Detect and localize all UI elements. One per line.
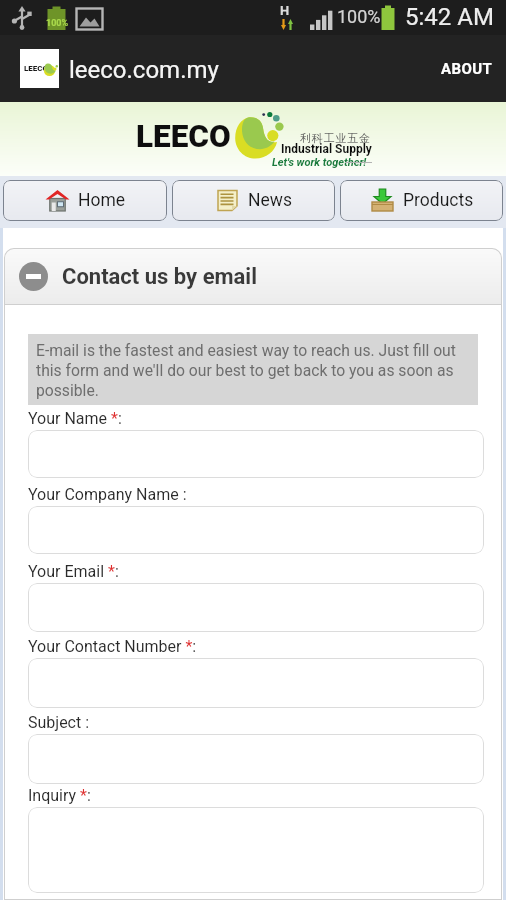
button[interactable] [28, 734, 484, 784]
button[interactable]: News [172, 180, 335, 221]
staticText: Your Name *: [28, 409, 122, 428]
button[interactable]: Contact us by email [4, 248, 502, 304]
staticText: H [280, 3, 290, 18]
button[interactable] [28, 583, 484, 632]
staticText: Inquiry *: [28, 786, 91, 805]
staticText: LEECO [24, 64, 49, 73]
staticText: News [248, 190, 292, 211]
staticText: LEECO [136, 118, 231, 155]
staticText: Your Email *: [28, 562, 119, 581]
staticText: Products [403, 190, 474, 211]
button[interactable]: Home [3, 180, 167, 221]
staticText: 100% [46, 18, 69, 29]
staticText: 利科工业五金 [300, 131, 371, 145]
staticText: leeco.com.my [69, 56, 219, 84]
staticText: Subject : [28, 713, 90, 732]
button[interactable]: ABOUT [428, 42, 506, 96]
staticText: E-mail is the fastest and easiest way to… [36, 341, 477, 400]
button[interactable] [28, 658, 484, 708]
staticText: ABOUT [441, 60, 493, 78]
button[interactable] [28, 430, 484, 478]
staticText: Your Company Name : [28, 485, 187, 504]
button[interactable] [28, 506, 484, 554]
button[interactable] [28, 807, 484, 893]
staticText: Let's work together! [272, 156, 367, 169]
staticText: Your Contact Number *: [28, 637, 197, 656]
staticText: Home [78, 190, 126, 211]
staticText: Industrial Supply [281, 142, 372, 156]
staticText: 100% [337, 6, 381, 27]
staticText: Contact us by email [62, 264, 257, 290]
button[interactable]: Products [340, 180, 503, 221]
staticText: 5:42 AM [405, 3, 494, 31]
